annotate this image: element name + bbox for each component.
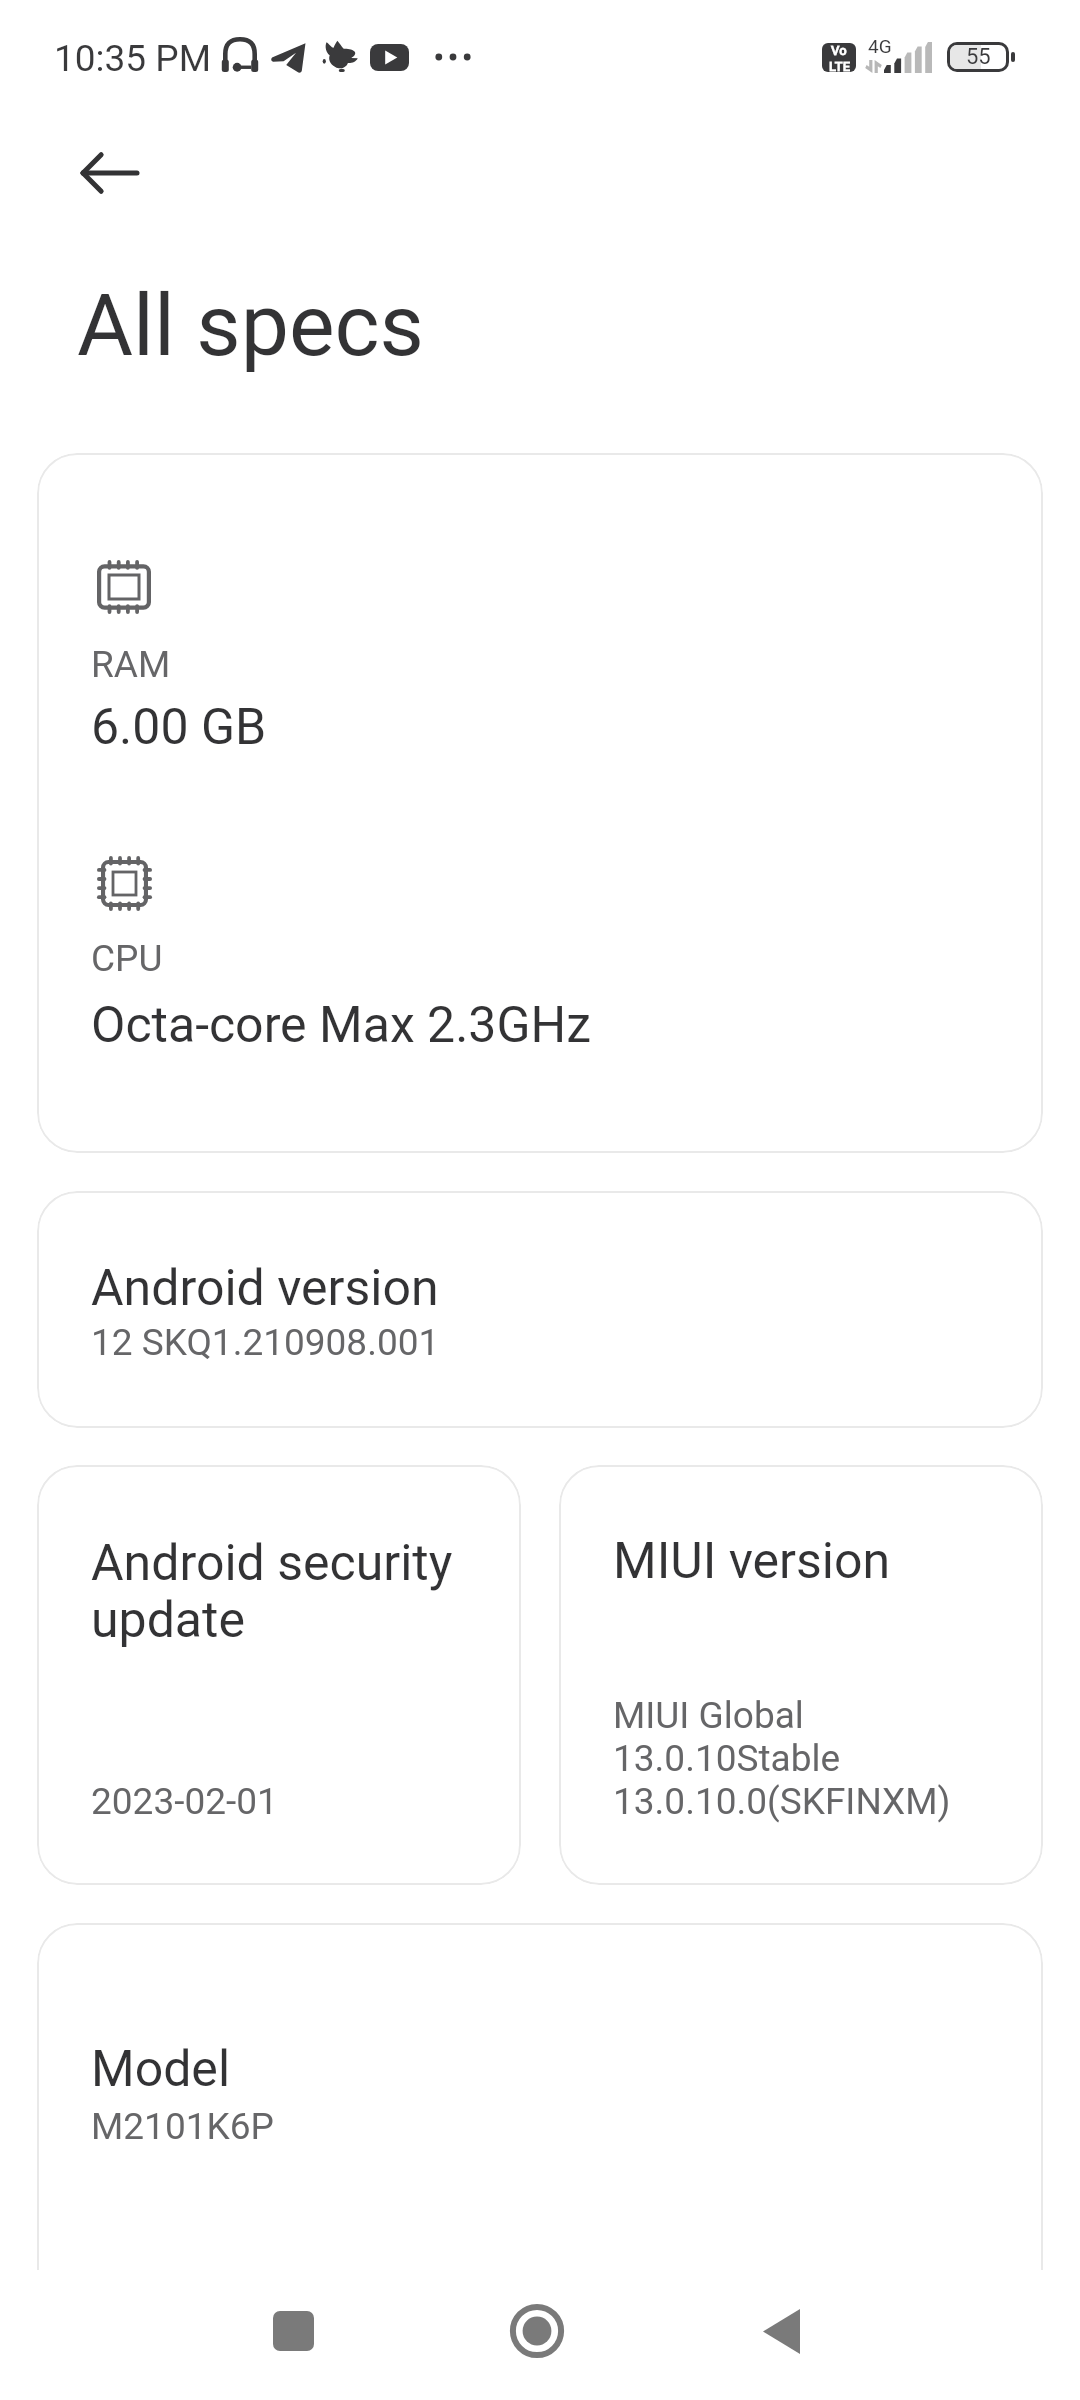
staticText: 2023-02-01	[91, 1780, 278, 1823]
staticText: 55	[966, 45, 991, 68]
staticText: CPU	[91, 937, 163, 980]
staticText: Model	[91, 2040, 231, 2099]
button[interactable]: Back	[708, 2272, 854, 2392]
staticText: MIUI version	[613, 1533, 891, 1590]
button[interactable]: Android security update	[37, 1465, 521, 1885]
staticText: 6.00 GB	[91, 698, 267, 757]
button[interactable]: Recent apps	[220, 2272, 366, 2392]
button[interactable]: MIUI version	[559, 1465, 1043, 1885]
staticText: Android version	[91, 1259, 439, 1318]
staticText: 12 SKQ1.210908.001	[91, 1321, 440, 1364]
staticText: RAM	[91, 643, 171, 686]
button[interactable]: RAM	[37, 453, 1043, 1153]
button[interactable]: Home	[464, 2272, 610, 2392]
staticText: Android security update	[91, 1535, 491, 1649]
staticText: Vo	[831, 43, 847, 58]
staticText: All specs	[77, 275, 424, 376]
staticText: MIUI Global 13.0.10Stable 13.0.10.0(SKFI…	[613, 1694, 951, 1823]
button[interactable]: Back	[71, 137, 146, 209]
staticText: Octa-core Max 2.3GHz	[91, 996, 591, 1055]
staticText: 4G	[868, 35, 892, 57]
staticText: LTE	[829, 59, 850, 72]
staticText: M2101K6P	[91, 2105, 274, 2148]
staticText: 10:35 PM	[54, 37, 211, 80]
button[interactable]: Model	[37, 1923, 1043, 2343]
button[interactable]: Android version	[37, 1191, 1043, 1428]
